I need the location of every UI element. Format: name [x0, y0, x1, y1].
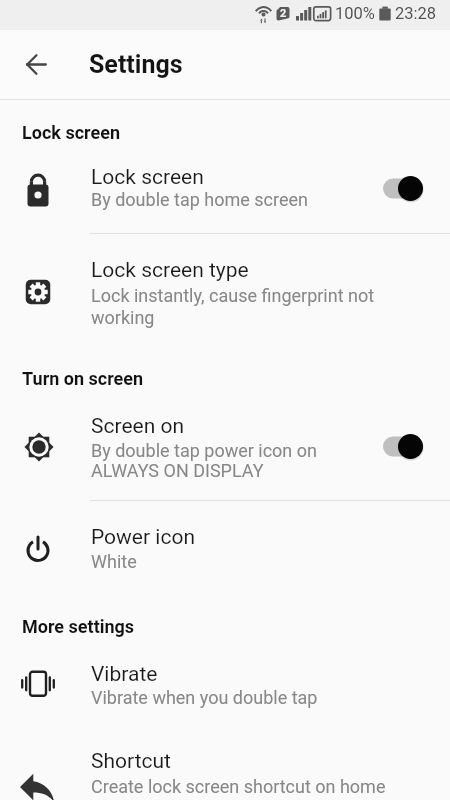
staticText: working: [91, 307, 155, 328]
staticText: Power icon: [91, 525, 196, 550]
staticText: Settings: [89, 50, 183, 79]
staticText: White: [91, 551, 137, 572]
staticText: Lock screen: [22, 122, 121, 143]
button[interactable]: [0, 243, 450, 344]
button[interactable]: [0, 405, 450, 492]
staticText: More settings: [22, 616, 135, 637]
staticText: By double tap power icon on: [91, 440, 317, 461]
staticText: Shortcut: [91, 749, 171, 774]
button[interactable]: [376, 430, 426, 464]
button[interactable]: [0, 510, 450, 585]
staticText: Vibrate when you double tap: [91, 687, 318, 708]
button[interactable]: [0, 652, 450, 722]
staticText: By double tap home screen: [91, 189, 308, 210]
staticText: Vibrate: [91, 662, 158, 687]
staticText: Lock instantly, cause fingerprint not: [91, 285, 375, 306]
button[interactable]: [0, 740, 450, 800]
staticText: Lock screen: [91, 165, 204, 190]
staticText: ALWAYS ON DISPLAY: [91, 460, 264, 481]
staticText: 23:28: [395, 4, 437, 23]
staticText: Screen on: [91, 414, 185, 439]
button[interactable]: [12, 40, 60, 88]
staticText: Create lock screen shortcut on home: [91, 776, 386, 797]
staticText: Turn on screen: [22, 368, 144, 389]
button[interactable]: [376, 172, 426, 206]
button[interactable]: [0, 152, 450, 233]
staticText: 100%: [335, 4, 375, 23]
staticText: Lock screen type: [91, 258, 249, 283]
staticText: 2: [280, 7, 287, 20]
